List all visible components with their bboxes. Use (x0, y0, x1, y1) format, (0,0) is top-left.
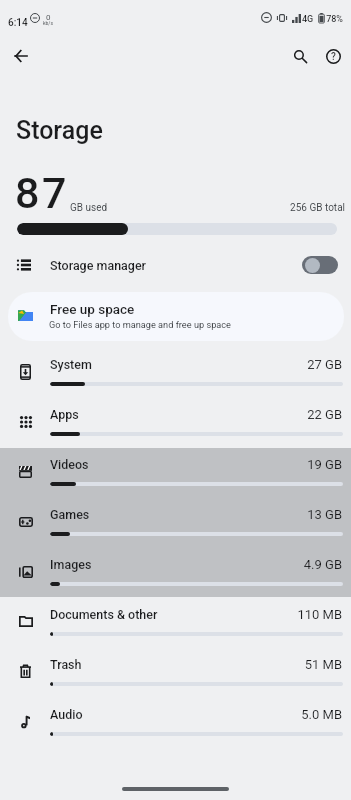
staticText: 110 MB (220, 607, 342, 622)
button[interactable]: System (0, 348, 351, 398)
button[interactable]: Help (311, 34, 351, 78)
button[interactable]: Apps (0, 398, 351, 448)
staticText: 19 GB (220, 457, 342, 472)
button[interactable]: Images (0, 548, 351, 598)
staticText: 51 MB (220, 657, 342, 672)
staticText: 27 GB (220, 357, 342, 372)
staticText: System (50, 357, 92, 372)
button[interactable]: Trash (0, 648, 351, 698)
staticText: Storage manager (50, 258, 147, 273)
staticText: 78% (325, 14, 343, 25)
staticText: 5.0 MB (220, 707, 342, 722)
staticText: 22 GB (220, 407, 342, 422)
staticText: 13 GB (220, 507, 342, 522)
staticText: Audio (50, 707, 83, 722)
staticText: ? (331, 51, 336, 63)
staticText: Documents & other (50, 607, 158, 622)
staticText: 256 GB total (240, 202, 345, 214)
staticText: 4G (302, 14, 314, 25)
button[interactable]: Back (0, 34, 43, 78)
button[interactable]: Audio (0, 698, 351, 748)
staticText: 4.9 GB (220, 557, 342, 572)
staticText: Trash (50, 657, 82, 672)
staticText: Videos (50, 457, 89, 472)
staticText: Images (50, 557, 92, 572)
staticText: Games (50, 507, 90, 522)
staticText: 87 (15, 168, 69, 218)
button[interactable]: Games (0, 498, 351, 548)
staticText: Free up space (50, 301, 135, 317)
button[interactable]: Free up space (8, 292, 344, 341)
staticText: kb/s (43, 20, 53, 26)
staticText: Storage (16, 116, 103, 145)
staticText: 0 (46, 13, 51, 22)
button[interactable]: Storage manager (0, 243, 351, 287)
button[interactable]: Documents & other (0, 598, 351, 648)
staticText: Apps (50, 407, 79, 422)
staticText: GB used (70, 202, 108, 214)
staticText: 6:14 (8, 17, 28, 29)
staticText: Go to Files app to manage and free up sp… (49, 319, 231, 330)
button[interactable]: Search (278, 34, 322, 78)
button[interactable]: Videos (0, 448, 351, 498)
